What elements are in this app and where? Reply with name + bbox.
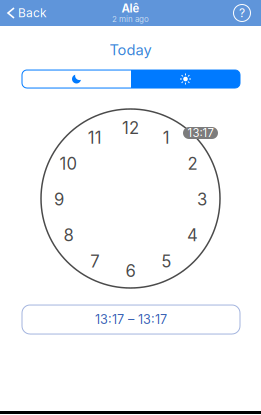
button[interactable]: Help <box>229 0 255 26</box>
staticText: 12 <box>122 118 139 138</box>
staticText: 10 <box>60 154 78 174</box>
staticText: 6 <box>125 261 135 281</box>
staticText: Alê <box>121 2 139 15</box>
button[interactable]: Back <box>0 0 47 26</box>
button[interactable]: Night <box>22 70 131 88</box>
button[interactable]: Day <box>131 70 240 88</box>
staticText: Back <box>18 6 47 20</box>
staticText: 3 <box>197 189 207 210</box>
staticText: 13:17 <box>187 126 213 140</box>
staticText: 1 <box>163 127 170 148</box>
staticText: 5 <box>161 251 171 271</box>
button[interactable]: 13:17 – 13:17 <box>22 305 240 334</box>
staticText: 9 <box>54 189 64 210</box>
staticText: ? <box>239 6 245 20</box>
staticText: 2 <box>187 154 197 174</box>
staticText: 11 <box>88 127 102 148</box>
staticText: 4 <box>187 225 198 245</box>
staticText: 7 <box>90 251 99 271</box>
staticText: 8 <box>64 225 74 245</box>
staticText: Today <box>109 41 151 59</box>
staticText: 2 min ago <box>112 14 149 24</box>
staticText: 13:17 – 13:17 <box>95 312 167 327</box>
